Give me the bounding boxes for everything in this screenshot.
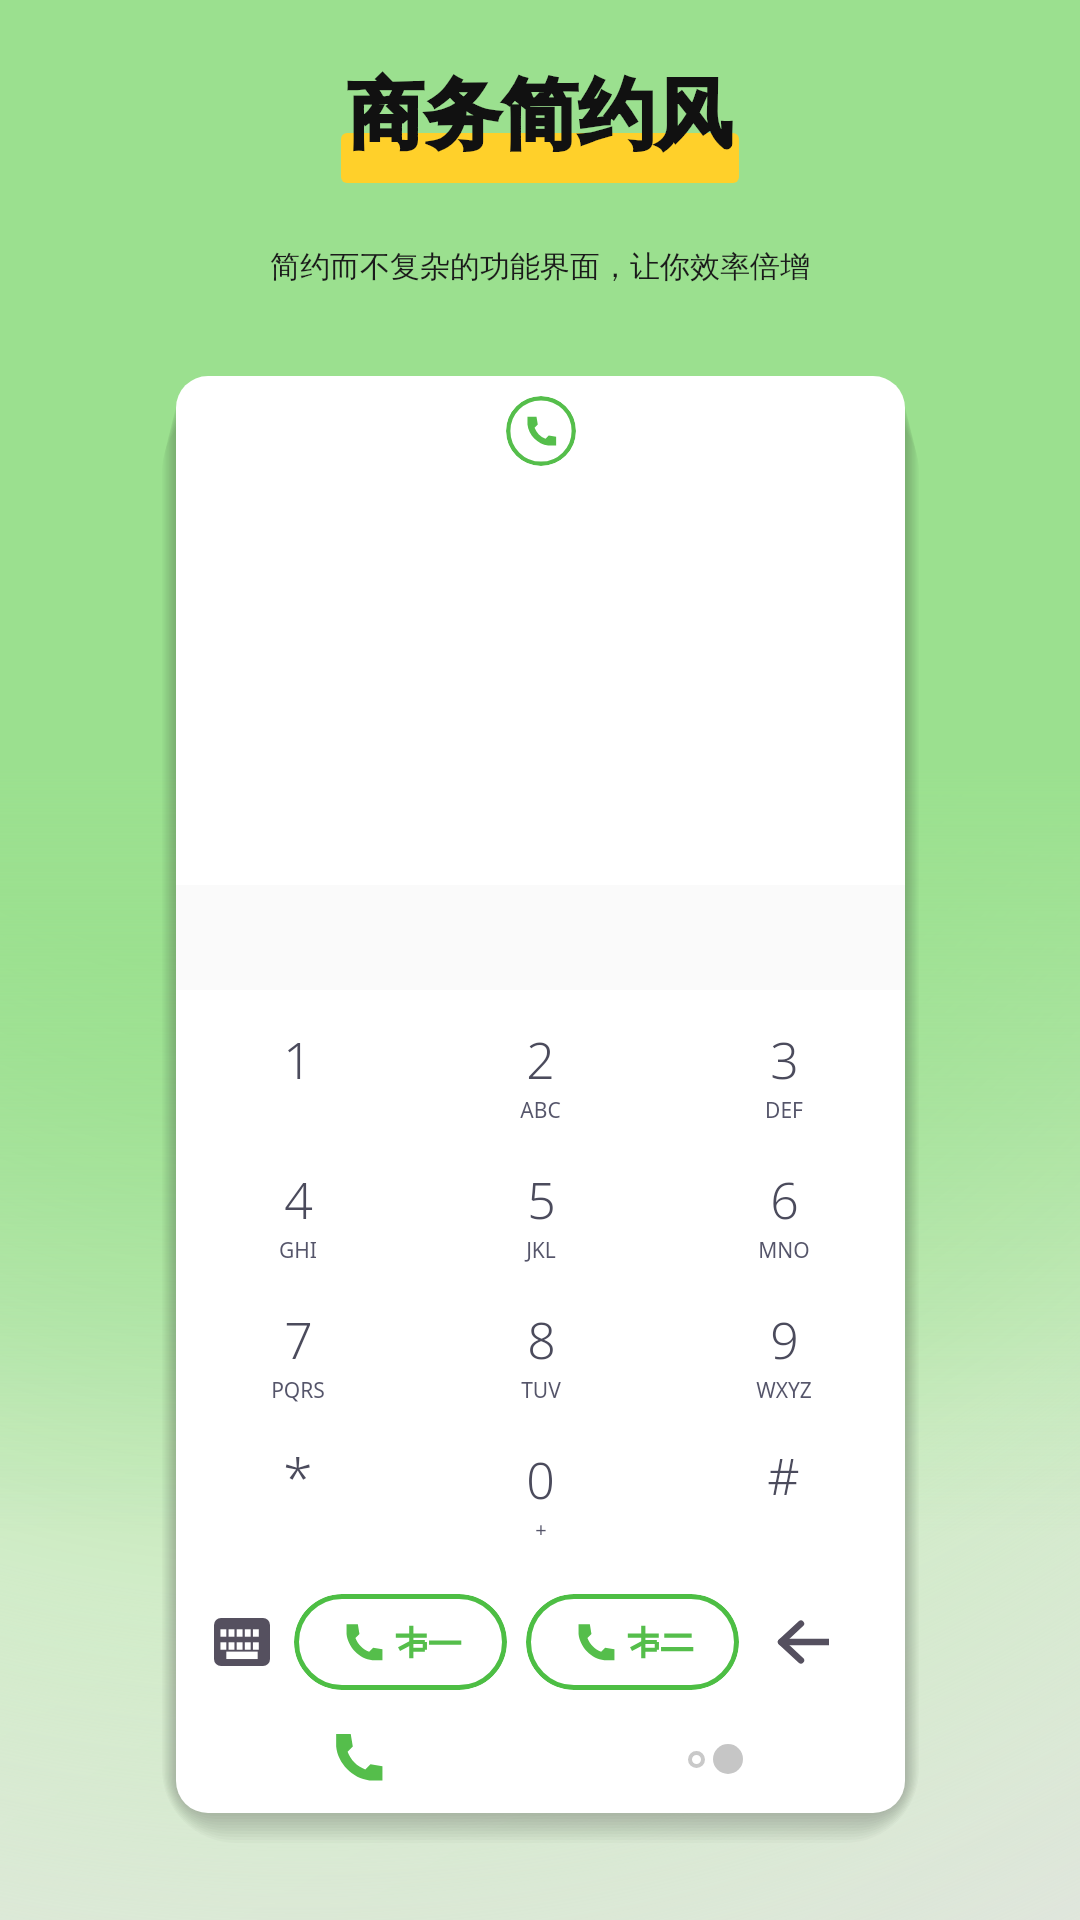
staticText: 5 (527, 1166, 556, 1234)
staticText: DEF (765, 1096, 803, 1125)
staticText: 8 (527, 1306, 556, 1374)
button[interactable]: 1 (176, 1026, 419, 1166)
button[interactable]: 8 (419, 1306, 662, 1446)
button[interactable]: Keypad tab (326, 1725, 390, 1789)
staticText: 1 (283, 1026, 312, 1094)
staticText: MNO (758, 1236, 810, 1265)
staticText: TUV (521, 1376, 561, 1405)
button[interactable]: 7 (176, 1306, 419, 1446)
staticText: + (535, 1516, 547, 1543)
button[interactable]: Delete (771, 1610, 835, 1674)
button[interactable]: 6 (662, 1166, 905, 1306)
button[interactable]: 5 (419, 1166, 662, 1306)
button[interactable]: 4 (176, 1166, 419, 1306)
button[interactable]: 9 (662, 1306, 905, 1446)
staticText: 简约而不复杂的功能界面，让你效率倍增 (0, 248, 1080, 286)
button[interactable]: Call with SIM 1 (294, 1594, 507, 1690)
button[interactable]: * (176, 1446, 419, 1586)
button[interactable]: # (662, 1446, 905, 1586)
button[interactable]: 3 (662, 1026, 905, 1166)
staticText: 商务简约风 (0, 68, 1080, 164)
staticText: # (767, 1442, 800, 1510)
staticText: 7 (284, 1306, 313, 1374)
staticText: * (283, 1440, 313, 1514)
staticText: 3 (770, 1026, 799, 1094)
staticText: 9 (770, 1306, 799, 1374)
staticText: WXYZ (756, 1376, 812, 1405)
staticText: 2 (526, 1026, 555, 1094)
button[interactable]: Dial (506, 396, 576, 466)
button[interactable]: 2 (419, 1026, 662, 1166)
staticText: JKL (526, 1236, 556, 1265)
staticText: 6 (770, 1166, 799, 1234)
staticText: ABC (520, 1096, 561, 1125)
button[interactable]: Call with SIM 2 (526, 1594, 739, 1690)
staticText: 4 (284, 1166, 313, 1234)
button[interactable]: Show keyboard (210, 1610, 274, 1674)
staticText: PQRS (271, 1376, 325, 1405)
staticText: 0 (526, 1446, 555, 1514)
staticText: GHI (279, 1236, 317, 1265)
button[interactable]: 0 (419, 1446, 662, 1586)
